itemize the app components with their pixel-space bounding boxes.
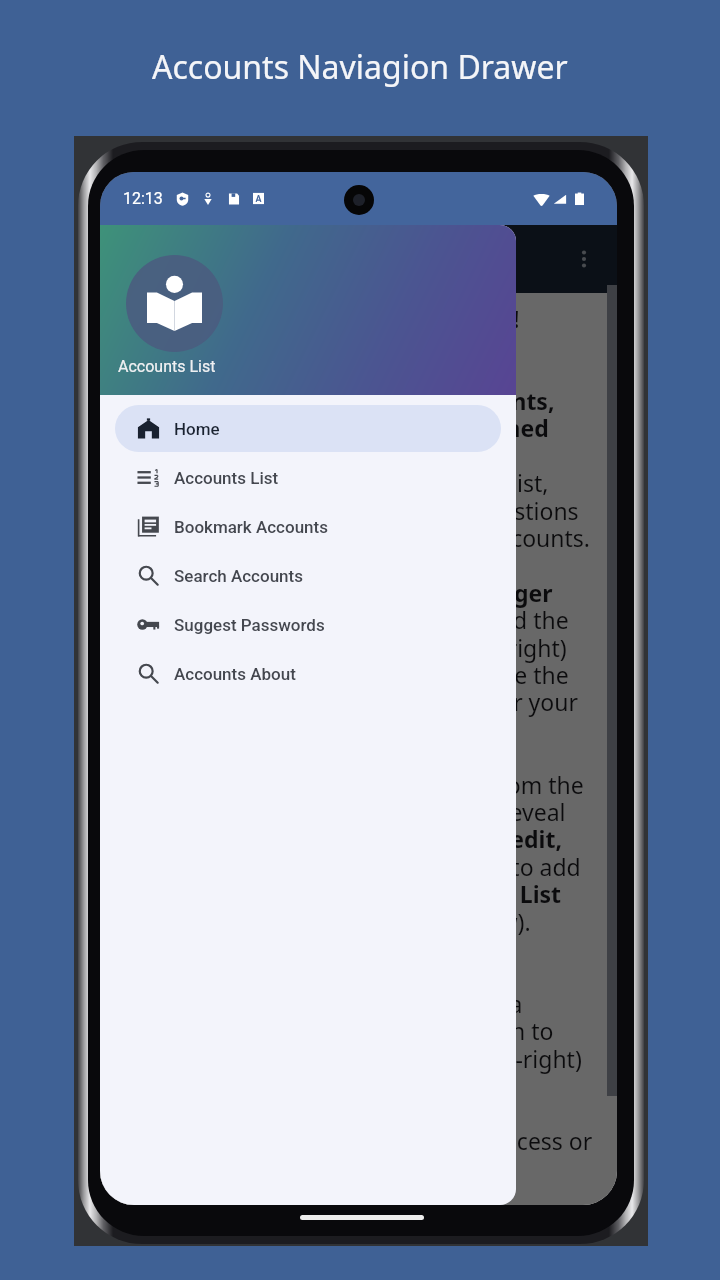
staticText: Manage all of your online accounts, (147, 385, 555, 416)
staticText: settings icon (top-right) (314, 632, 567, 663)
button[interactable]: Suggest Passwords (115, 601, 501, 648)
button[interactable]: Accounts About (115, 650, 501, 697)
staticText: Welcome! (408, 303, 520, 334)
staticText: Keep an accounts list, (315, 467, 549, 498)
staticText: new detail screen to (337, 1015, 554, 1046)
button[interactable]: Home (115, 405, 501, 452)
staticText: Home (174, 419, 220, 439)
staticText: long press to add (393, 851, 581, 882)
staticText: Search Accounts (174, 566, 303, 586)
staticText: left edge to reveal (371, 796, 566, 827)
staticText: with password suggestions (285, 495, 579, 526)
staticText: manner. (272, 440, 365, 471)
button[interactable]: Accounts List (115, 454, 501, 501)
staticText: Tap on a card to open a (270, 988, 523, 1019)
button[interactable]: Bookmark Accounts (115, 503, 501, 550)
staticText: Accounts About (174, 664, 296, 684)
staticText: to Accounts List (378, 878, 562, 909)
button[interactable]: Search Accounts (115, 552, 501, 599)
staticText: Use the hamburger (330, 577, 553, 608)
staticText: (below). (446, 906, 531, 937)
staticText: the drawer. To edit, (343, 823, 562, 854)
staticText: Suggest Passwords (174, 615, 325, 635)
staticText: passwords in a single combined (186, 412, 549, 443)
staticText: for quick access or (392, 1125, 593, 1156)
staticText: for all of your accounts. (336, 522, 591, 553)
staticText: 12:13 (123, 189, 163, 208)
staticText: Accounts Naviagion Drawer (152, 45, 568, 89)
staticText: Accounts List (174, 468, 279, 488)
staticText: Bookmark Accounts (174, 517, 328, 537)
staticText: Accounts List (118, 357, 216, 376)
staticText: buttons to see the (372, 659, 569, 690)
staticText: features for your (396, 686, 578, 717)
staticText: view it (bottom-right) (354, 1043, 582, 1074)
button[interactable]: More options (564, 239, 604, 279)
staticText: Swipe right from the (362, 769, 584, 800)
staticText: menu button and the (338, 604, 569, 635)
